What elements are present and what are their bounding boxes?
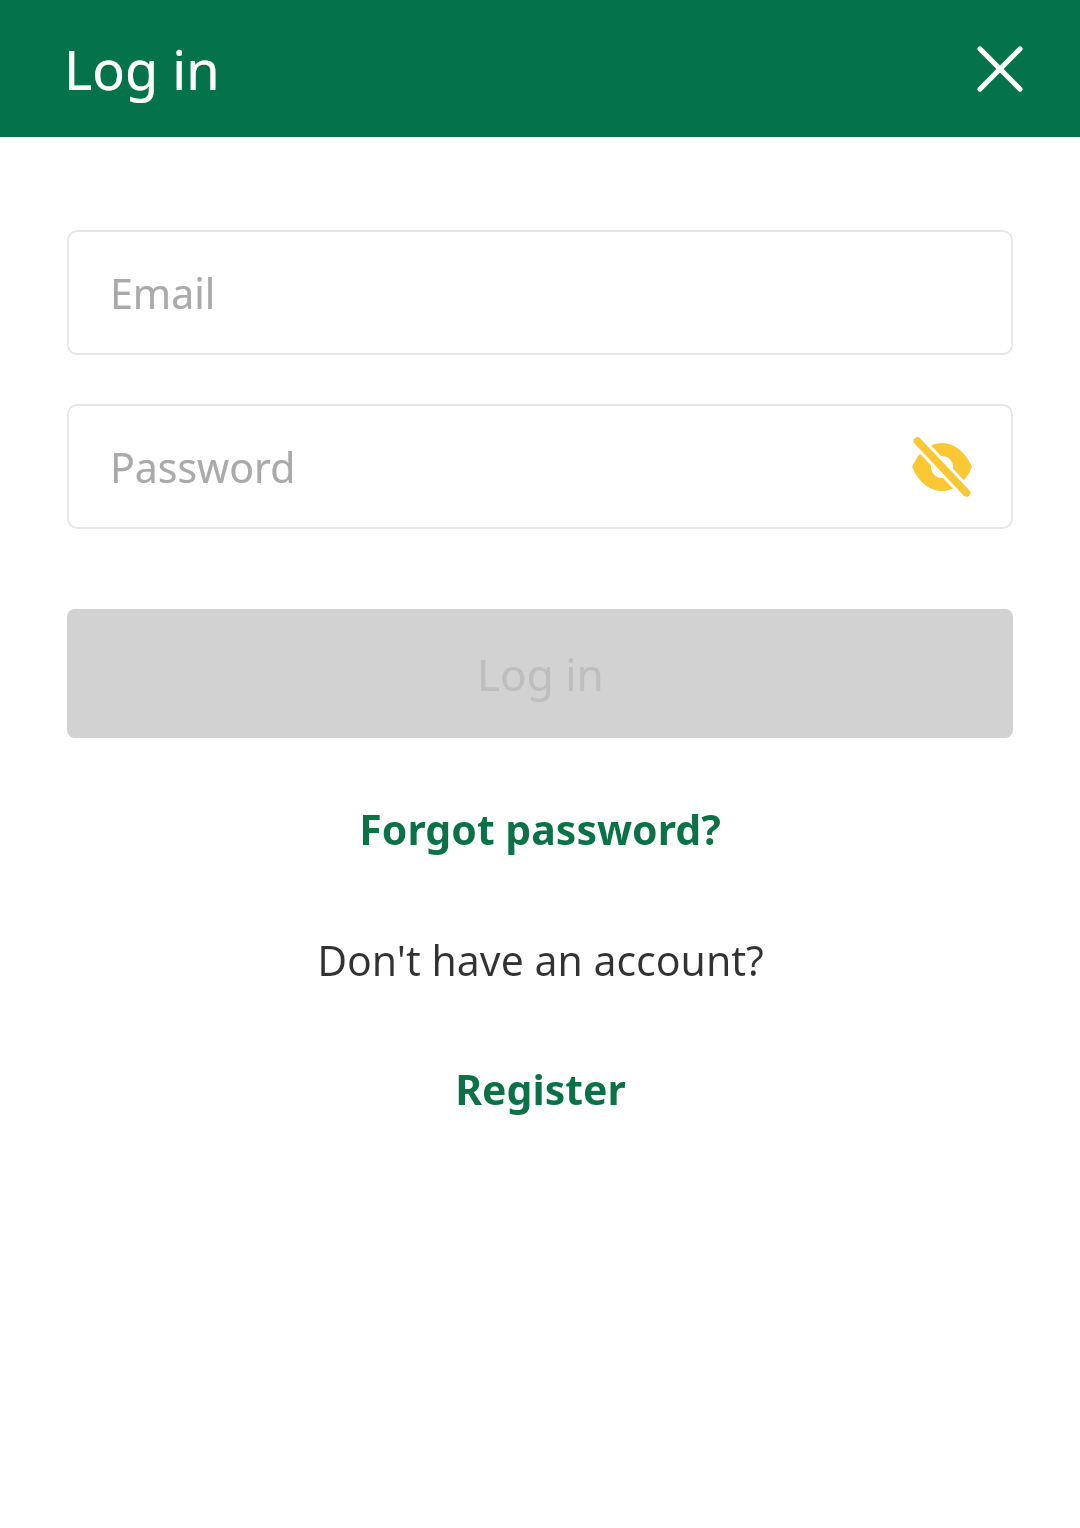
staticText: Log in	[477, 644, 604, 704]
staticText: Password	[110, 439, 296, 495]
button[interactable]: Don't have an account?	[305, 928, 776, 992]
staticText: Log in	[64, 32, 220, 106]
staticText: Register	[455, 1061, 626, 1117]
button[interactable]: Email	[67, 230, 1013, 355]
button[interactable]: Show password	[901, 426, 983, 508]
button[interactable]: Password	[67, 404, 1013, 529]
button[interactable]: Close	[962, 31, 1038, 107]
staticText: Forgot password?	[359, 801, 721, 857]
button[interactable]: Register	[443, 1057, 638, 1121]
staticText: Email	[110, 265, 216, 321]
button[interactable]: Forgot password?	[347, 797, 733, 861]
staticText: Don't have an account?	[317, 932, 764, 988]
